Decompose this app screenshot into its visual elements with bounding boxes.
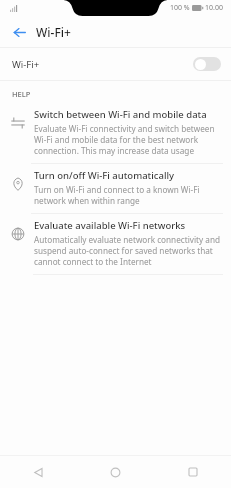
button[interactable]: Wi-Fi+ xyxy=(0,48,231,80)
button[interactable]: Turn on/off Wi-Fi automatically xyxy=(0,164,231,213)
staticText: Turn on Wi-Fi and connect to a known Wi-… xyxy=(34,184,221,206)
button[interactable]: Back xyxy=(0,456,77,488)
staticText: Switch between Wi-Fi and mobile data xyxy=(34,108,207,121)
staticText: Evaluate available Wi-Fi networks xyxy=(34,219,186,232)
staticText: Evaluate Wi-Fi connectivity and switch b… xyxy=(34,123,221,156)
staticText: Turn on/off Wi-Fi automatically xyxy=(34,169,175,182)
staticText: Automatically evaluate network connectiv… xyxy=(34,234,221,267)
button[interactable]: Home xyxy=(77,456,154,488)
staticText: HELP xyxy=(12,89,31,99)
button[interactable]: Recent apps xyxy=(154,456,231,488)
button[interactable]: Back xyxy=(8,21,30,43)
staticText: Wi-Fi+ xyxy=(36,24,71,40)
button[interactable]: Wi-Fi+ toggle xyxy=(193,57,221,71)
button[interactable]: Evaluate available Wi-Fi networks xyxy=(0,214,231,274)
button[interactable]: Switch between Wi-Fi and mobile data xyxy=(0,103,231,163)
staticText: 10.00 xyxy=(205,3,223,13)
staticText: Wi-Fi+ xyxy=(12,58,40,71)
staticText: 100 % xyxy=(170,3,190,13)
